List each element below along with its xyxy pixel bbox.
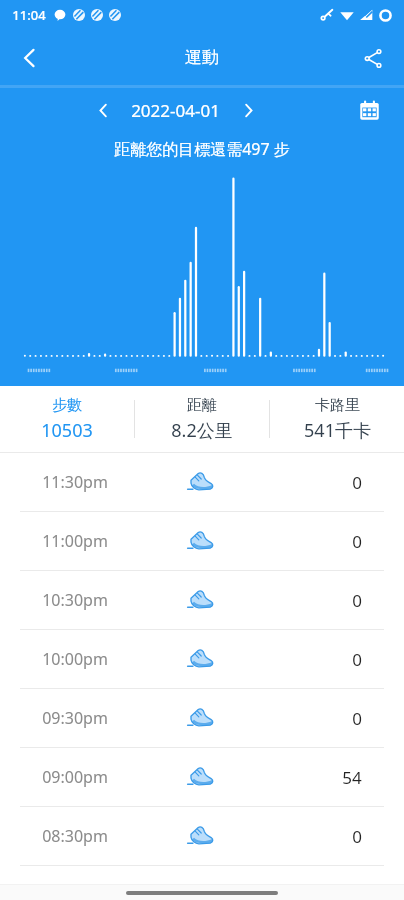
button[interactable]: 卡路里 [270, 386, 404, 452]
button[interactable]: Previous day [85, 92, 121, 128]
staticText: 08:30pm [42, 825, 108, 847]
staticText: 距離您的目標還需497 步 [114, 138, 290, 160]
staticText: 0 [352, 825, 362, 848]
staticText: 11:30pm [42, 471, 108, 493]
staticText: 0 [352, 648, 362, 671]
button[interactable]: 步數 [0, 386, 134, 452]
staticText: 09:30pm [42, 707, 108, 729]
button[interactable]: Share [350, 35, 396, 81]
button[interactable]: Pick date [352, 93, 386, 127]
button[interactable]: Next day [230, 92, 266, 128]
button[interactable]: 距離 [135, 386, 269, 452]
button[interactable]: 10:30pm [0, 571, 404, 629]
staticText: 運動 [185, 47, 219, 68]
staticText: 54 [342, 766, 362, 789]
button[interactable]: Back [6, 34, 54, 82]
staticText: 0 [352, 471, 362, 494]
staticText: 0 [352, 530, 362, 553]
button[interactable]: 09:00pm [0, 748, 404, 806]
staticText: 11:00pm [42, 530, 108, 552]
staticText: 距離 [187, 396, 217, 415]
staticText: 10:00pm [42, 648, 108, 670]
staticText: 步數 [52, 396, 82, 415]
staticText: 09:00pm [42, 766, 108, 788]
staticText: 0 [352, 589, 362, 612]
staticText: 8.2公里 [171, 418, 233, 443]
button[interactable]: 08:30pm [0, 807, 404, 865]
staticText: 541千卡 [304, 418, 371, 443]
staticText: 10:30pm [42, 589, 108, 611]
button[interactable]: 11:00pm [0, 512, 404, 570]
button[interactable]: 10:00pm [0, 630, 404, 688]
staticText: 0 [352, 707, 362, 730]
staticText: 卡路里 [315, 396, 360, 415]
button[interactable]: 11:30pm [0, 453, 404, 511]
staticText: 11:04 [12, 6, 46, 24]
staticText: 2022-04-01 [131, 99, 220, 122]
staticText: 10503 [41, 418, 93, 443]
button[interactable]: 09:30pm [0, 689, 404, 747]
